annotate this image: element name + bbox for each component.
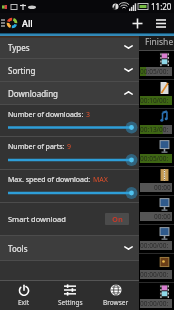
staticText: 00:05/00:02 xyxy=(140,67,171,76)
staticText: 00:05/00:00 xyxy=(140,154,171,163)
button[interactable]: Menu xyxy=(0,13,5,33)
staticText: Sorting xyxy=(8,65,36,76)
button[interactable]: 00:00/00:00 xyxy=(139,225,174,254)
button[interactable]: Add download xyxy=(125,13,149,33)
staticText: 00:13/00:30 xyxy=(140,125,171,134)
button[interactable]: Exit xyxy=(0,281,47,310)
button[interactable]: 00:00 xyxy=(139,167,174,196)
button[interactable]: Tools xyxy=(0,236,139,260)
staticText: Smart download xyxy=(8,214,66,224)
button[interactable]: Downloading xyxy=(0,82,139,104)
staticText: MAX xyxy=(93,175,108,185)
staticText: Tools xyxy=(8,243,28,254)
button[interactable]: 00:00/00:00 xyxy=(139,283,174,310)
staticText: Downloading xyxy=(8,88,58,99)
button[interactable]: More options xyxy=(149,13,173,33)
button[interactable]: Browser xyxy=(93,281,139,310)
staticText: All xyxy=(22,17,33,29)
button[interactable]: Smart download xyxy=(0,203,139,235)
staticText: 11:20 xyxy=(151,1,172,12)
button[interactable]: 00:05/00:00 xyxy=(139,138,174,167)
staticText: Types xyxy=(8,42,30,53)
button[interactable]: 00:13/00:30 xyxy=(139,109,174,138)
staticText: 00:00/00:00 xyxy=(140,270,171,279)
button[interactable]: Types xyxy=(0,36,139,58)
staticText: On xyxy=(112,214,123,224)
staticText: 9 xyxy=(67,142,72,152)
staticText: Finished xyxy=(145,36,174,50)
staticText: Exit xyxy=(18,298,30,307)
button[interactable]: 00:00/00:00 xyxy=(139,254,174,283)
button[interactable]: 00:05/00:02 xyxy=(139,51,174,80)
button[interactable]: 00:10/00:00 xyxy=(139,80,174,109)
button[interactable]: Number of parts: xyxy=(0,137,139,170)
button[interactable]: Settings xyxy=(47,281,93,310)
button[interactable]: Number of downloads: xyxy=(0,105,139,137)
staticText: 00:00 xyxy=(154,212,171,221)
staticText: 00:00/00:00 xyxy=(140,241,171,250)
staticText: 00:00/00:00 xyxy=(140,299,171,308)
staticText: Number of downloads: xyxy=(8,110,86,120)
staticText: 00:00 xyxy=(154,183,171,192)
staticText: 00:10/00:00 xyxy=(140,96,171,105)
staticText: Number of parts: xyxy=(8,142,67,152)
staticText: Browser xyxy=(103,298,129,307)
staticText: Settings xyxy=(58,298,83,307)
staticText: 3 xyxy=(86,110,91,120)
button[interactable]: 00:00 xyxy=(139,196,174,225)
staticText: Max. speed of download: xyxy=(8,175,93,185)
button[interactable]: Max. speed of download: xyxy=(0,170,139,203)
button[interactable]: Sorting xyxy=(0,59,139,81)
